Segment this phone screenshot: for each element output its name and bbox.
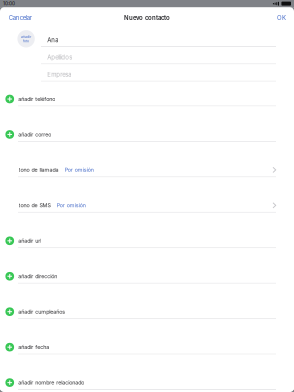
staticText: Nuevo contacto bbox=[124, 14, 170, 21]
staticText: añadir bbox=[21, 35, 31, 39]
staticText: Por omisión bbox=[57, 202, 86, 209]
staticText: tono de llamada bbox=[19, 167, 59, 173]
button[interactable]: Cancelar bbox=[0, 10, 38, 25]
button[interactable]: añadir fecha bbox=[0, 319, 294, 355]
button[interactable]: añadir teléfono bbox=[0, 82, 294, 106]
button[interactable]: OK bbox=[271, 10, 294, 25]
staticText: 10:00 bbox=[3, 1, 15, 6]
staticText: añadir dirección bbox=[18, 273, 57, 279]
button[interactable]: tono de llamada bbox=[0, 142, 294, 177]
staticText: Empresa bbox=[47, 71, 71, 78]
staticText: Apellidos bbox=[47, 54, 72, 61]
staticText: tono de SMS bbox=[19, 202, 51, 209]
staticText: foto bbox=[23, 39, 29, 43]
staticText: Por omisión bbox=[65, 167, 94, 173]
staticText: añadir nombre relacionado bbox=[18, 379, 84, 386]
staticText: Ana bbox=[47, 36, 58, 44]
button[interactable]: añadir url bbox=[0, 213, 294, 248]
button[interactable]: añadir dirección bbox=[0, 248, 294, 284]
staticText: añadir teléfono bbox=[18, 96, 55, 102]
button[interactable]: Añadir foto bbox=[17, 30, 35, 47]
button[interactable]: añadir nombre relacionado bbox=[0, 354, 294, 390]
staticText: añadir correo bbox=[18, 131, 51, 138]
button[interactable]: añadir cumpleaños bbox=[0, 284, 294, 319]
staticText: añadir fecha bbox=[18, 344, 49, 350]
staticText: OK bbox=[277, 14, 286, 21]
button[interactable]: añadir correo bbox=[0, 106, 294, 142]
staticText: añadir cumpleaños bbox=[18, 308, 65, 315]
staticText: Cancelar bbox=[9, 14, 32, 21]
staticText: añadir url bbox=[18, 238, 41, 244]
button[interactable]: tono de SMS bbox=[0, 177, 294, 213]
